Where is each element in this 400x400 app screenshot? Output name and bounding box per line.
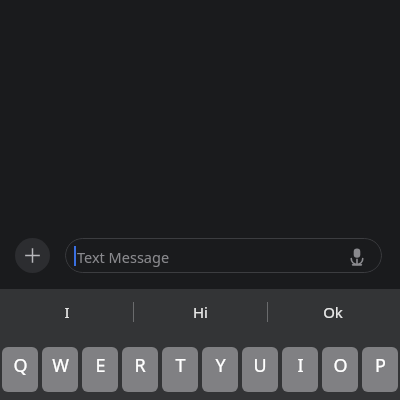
- button[interactable]: Hi: [156, 289, 244, 334]
- staticText: Ok: [323, 302, 343, 322]
- staticText: P: [375, 353, 386, 378]
- button[interactable]: Y: [202, 347, 238, 392]
- staticText: Text Message: [77, 247, 170, 267]
- button[interactable]: O: [322, 347, 358, 392]
- staticText: I: [64, 302, 70, 322]
- button[interactable]: E: [82, 347, 118, 392]
- button[interactable]: I: [23, 289, 111, 334]
- staticText: R: [134, 353, 146, 378]
- button[interactable]: W: [42, 347, 78, 392]
- staticText: T: [175, 353, 186, 378]
- button[interactable]: Ok: [289, 289, 377, 334]
- staticText: Q: [13, 353, 28, 378]
- button[interactable]: P: [362, 347, 398, 392]
- button[interactable]: Add attachment: [15, 238, 50, 273]
- button[interactable]: Q: [2, 347, 38, 392]
- staticText: Y: [215, 353, 226, 378]
- staticText: E: [95, 353, 106, 378]
- button[interactable]: T: [162, 347, 198, 392]
- staticText: O: [333, 353, 348, 378]
- staticText: I: [297, 353, 304, 378]
- staticText: Hi: [193, 302, 208, 322]
- button[interactable]: U: [242, 347, 278, 392]
- staticText: W: [52, 353, 69, 378]
- button[interactable]: I: [282, 347, 318, 392]
- button[interactable]: R: [122, 347, 158, 392]
- button[interactable]: Text Message: [65, 238, 382, 273]
- button[interactable]: Voice input: [346, 245, 368, 267]
- staticText: U: [253, 353, 267, 378]
